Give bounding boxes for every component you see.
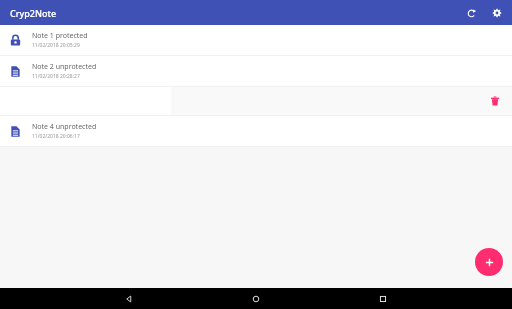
button[interactable]: Back: [120, 290, 138, 308]
button[interactable]: Delete: [488, 94, 502, 108]
staticText: 11/02/2018 20:28:27: [32, 73, 80, 80]
staticText: Note 2 unprotected: [32, 62, 97, 72]
staticText: Note 4 unprotected: [32, 122, 97, 132]
button[interactable]: Home: [247, 290, 265, 308]
staticText: Cryp2Note: [10, 7, 57, 19]
button[interactable]: Note 2 unprotected: [0, 56, 512, 86]
staticText: 11/02/2018 20:06:17: [32, 133, 80, 140]
button[interactable]: Add note: [475, 248, 503, 276]
button[interactable]: Note 4 unprotected: [0, 116, 512, 146]
button[interactable]: Delete: [0, 87, 512, 115]
button[interactable]: Recent apps: [374, 290, 392, 308]
button[interactable]: Note 1 protected: [0, 25, 512, 55]
staticText: 11/02/2018 20:05:29: [32, 42, 80, 49]
button[interactable]: Settings: [487, 3, 507, 23]
button[interactable]: Refresh: [461, 3, 481, 23]
staticText: Note 1 protected: [32, 31, 88, 41]
